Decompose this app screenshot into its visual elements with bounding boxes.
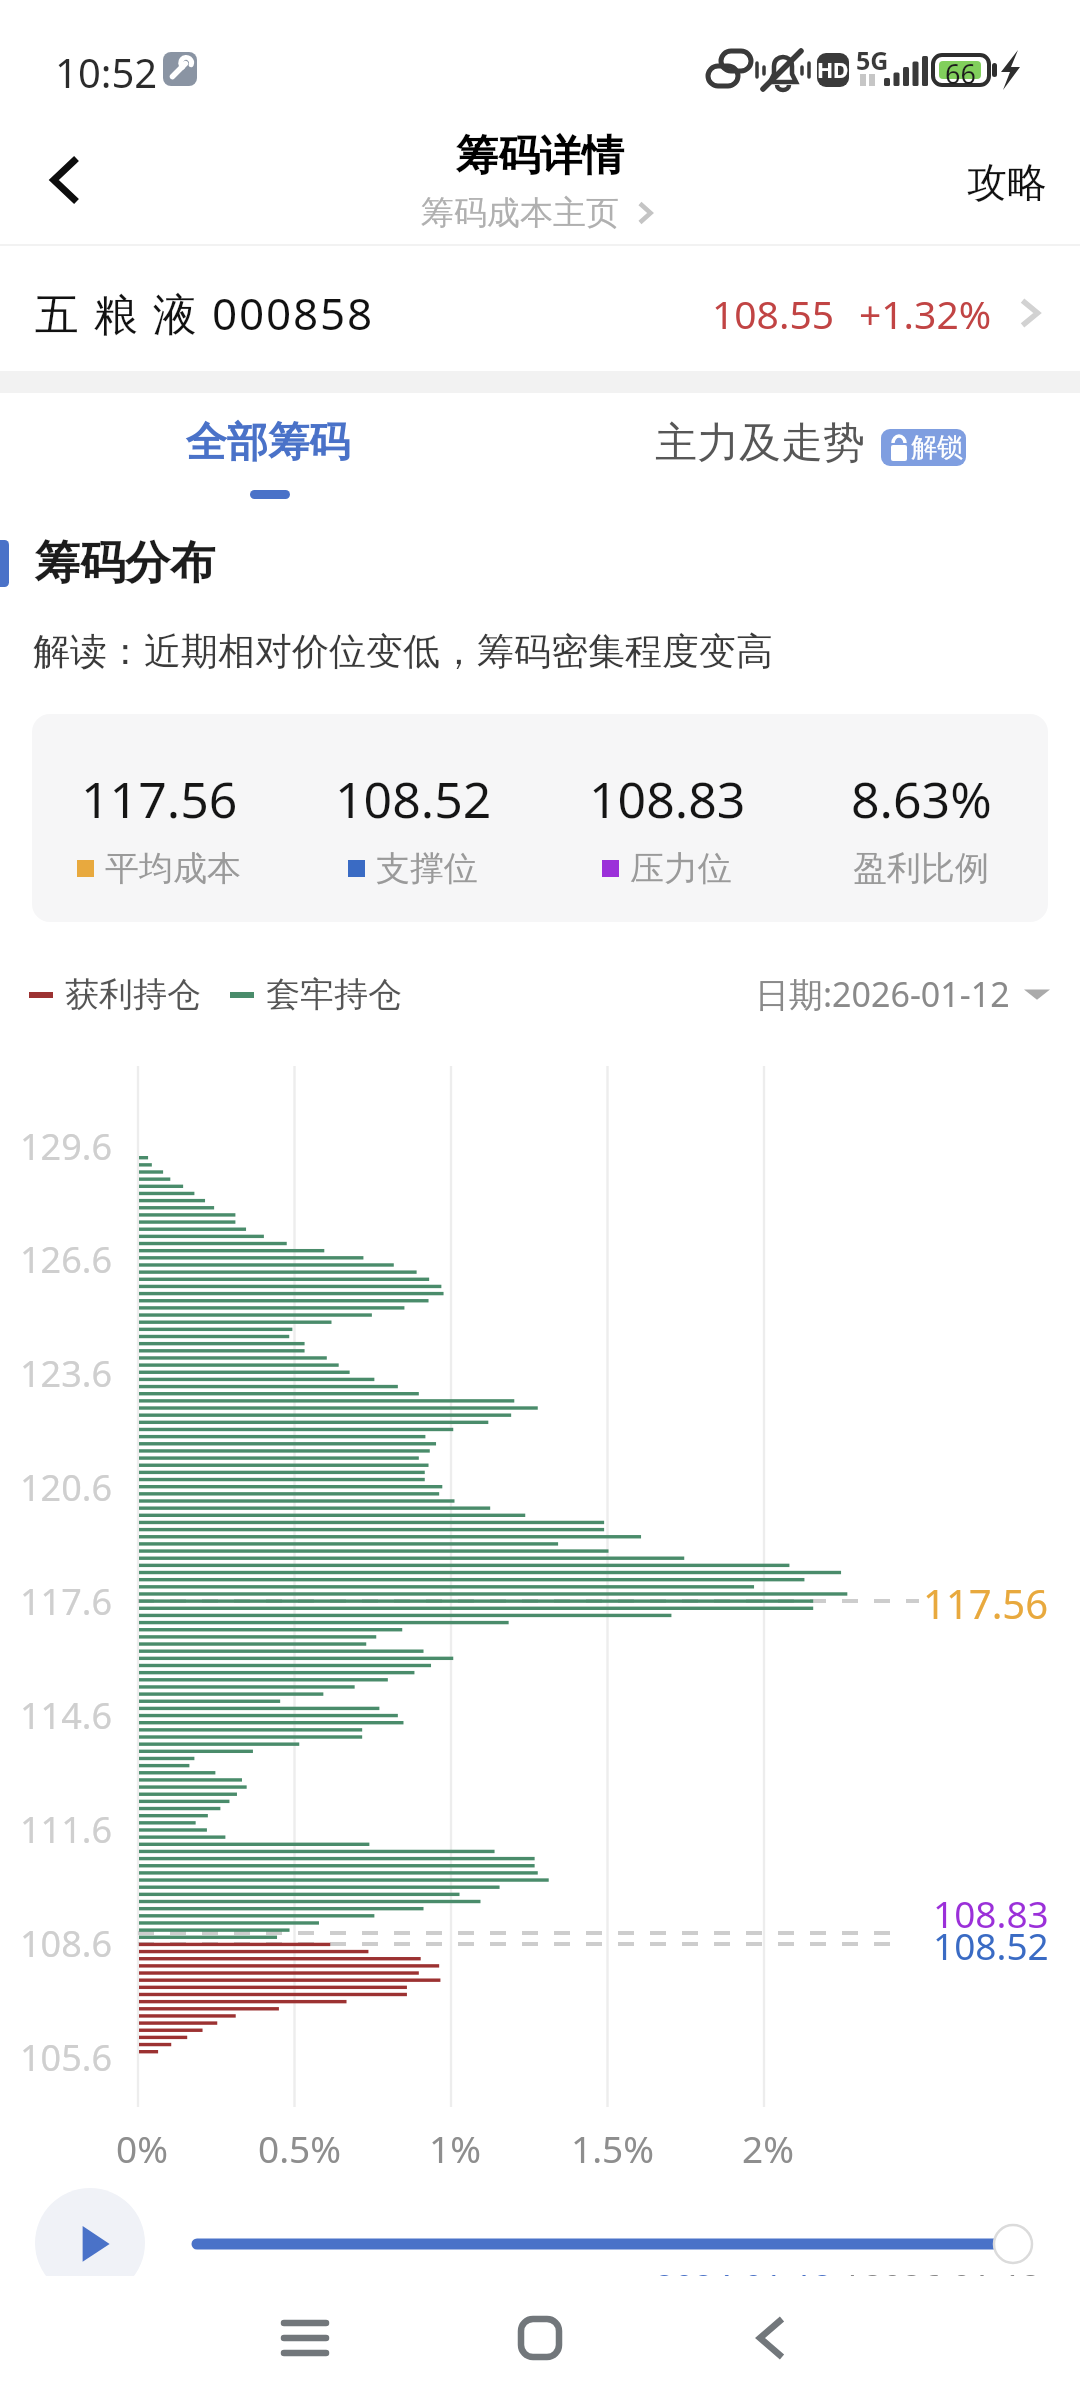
button[interactable]: 日期:2026-01-12 [755, 971, 1050, 1017]
staticText: 获利持仓 [65, 973, 201, 1016]
staticText: 108.52 [335, 765, 492, 833]
staticText: 10:52 [55, 45, 158, 99]
staticText: 120.6 [20, 1463, 113, 1511]
staticText: 0% [116, 2123, 168, 2173]
staticText: 129.6 [20, 1122, 113, 1170]
staticText: 8.63% [851, 765, 992, 833]
staticText: 117.6 [20, 1577, 113, 1625]
staticText: 105.6 [20, 2033, 113, 2081]
staticText: 日期:2026-01-12 [755, 971, 1010, 1017]
staticText: 筹码详情 [456, 130, 624, 183]
staticText: 111.6 [20, 1805, 113, 1853]
staticText: 66 [945, 55, 976, 85]
button[interactable]: 攻略 [933, 115, 1080, 245]
staticText: 全部筹码 [186, 417, 350, 469]
button[interactable]: Home [480, 2276, 600, 2400]
staticText: 108.52 [933, 1920, 1049, 1970]
staticText: 盈利比例 [853, 847, 989, 890]
staticText: 123.6 [20, 1349, 113, 1397]
staticText: 126.6 [20, 1235, 113, 1283]
staticText: 主力及走势 [655, 417, 865, 470]
staticText: 筹码成本主页 [421, 192, 619, 234]
staticText: 117.56 [81, 765, 238, 833]
button[interactable]: 主力及走势 [540, 393, 1080, 509]
staticText: 108.83 [589, 765, 746, 833]
button[interactable]: 全部筹码 [0, 393, 540, 509]
staticText: +1.32% [859, 287, 992, 340]
staticText: 108.6 [20, 1919, 113, 1967]
staticText: 2024-01-12 [655, 2264, 833, 2310]
staticText: 五 粮 液 000858 [35, 283, 374, 343]
staticText: 1.5% [571, 2123, 654, 2173]
staticText: 平均成本 [105, 847, 241, 890]
staticText: 0.5% [258, 2123, 341, 2173]
button[interactable]: 筹码成本主页 [421, 192, 659, 234]
staticText: 套牢持仓 [266, 973, 402, 1016]
button[interactable]: Back [0, 115, 130, 245]
staticText: 压力位 [630, 847, 732, 890]
staticText: 108.55 [712, 287, 834, 340]
button[interactable]: Play [35, 2188, 145, 2298]
button[interactable]: Back [712, 2276, 832, 2400]
staticText: 攻略 [967, 157, 1047, 207]
staticText: 114.6 [20, 1691, 113, 1739]
staticText: HD [817, 56, 849, 85]
staticText: 支撑位 [376, 847, 478, 890]
staticText: 108.83 [933, 1888, 1049, 1938]
button[interactable]: 五 粮 液 000858 [35, 245, 1052, 371]
staticText: 解读：近期相对价位变低，筹码密集程度变高 [33, 628, 773, 675]
button[interactable]: Recent apps [245, 2276, 365, 2400]
staticText: 解锁 [911, 431, 963, 464]
staticText: 1% [429, 2123, 481, 2173]
staticText: 2% [742, 2123, 794, 2173]
staticText: 117.56 [923, 1576, 1049, 1626]
staticText: 5G [856, 43, 889, 77]
staticText: / 2026-01-12 [833, 2264, 1041, 2310]
staticText: 筹码分布 [35, 535, 215, 592]
